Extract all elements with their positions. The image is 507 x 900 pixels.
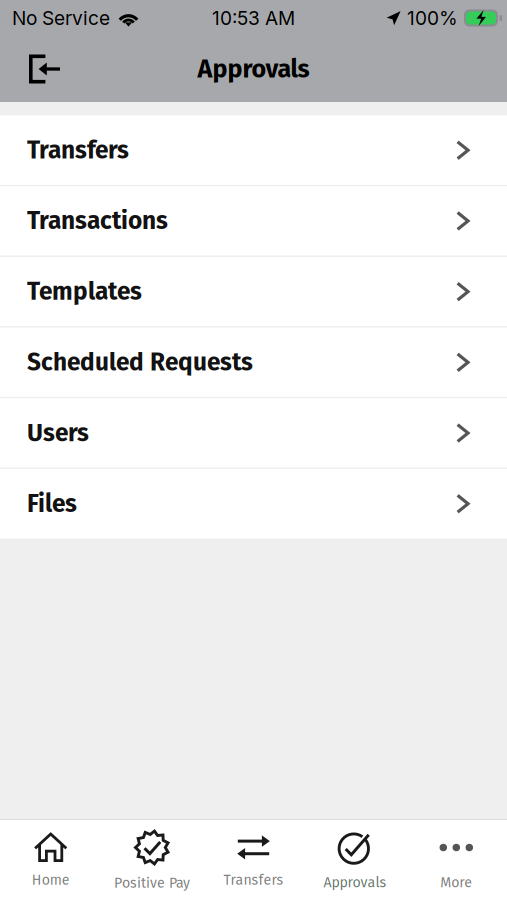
staticText: Scheduled Requests [27,348,253,377]
button[interactable]: Home [0,821,101,898]
button[interactable]: Approvals [304,819,406,900]
staticText: No Service [12,6,110,30]
button[interactable]: Transactions [0,186,507,256]
button[interactable]: More [406,819,507,900]
staticText: Approvals [323,874,386,891]
staticText: Home [32,871,70,888]
button[interactable]: Transfers [203,821,304,898]
staticText: Users [27,418,89,448]
staticText: 100% [407,6,458,30]
staticText: Transfers [223,871,283,888]
staticText: More [440,874,472,891]
button[interactable]: Templates [0,257,507,326]
button[interactable]: Users [0,398,507,468]
staticText: Templates [27,277,142,306]
button[interactable]: Transfers [0,115,507,185]
button[interactable]: Scheduled Requests [0,328,507,397]
staticText: Transactions [27,206,168,236]
staticText: Approvals [197,54,309,84]
button[interactable]: Sign out [0,43,79,95]
staticText: 10:53 AM [212,6,295,30]
button[interactable]: Positive Pay [101,818,203,900]
staticText: Transfers [27,136,129,165]
staticText: Positive Pay [114,874,190,891]
button[interactable]: Files [0,469,507,538]
staticText: Files [27,489,77,518]
